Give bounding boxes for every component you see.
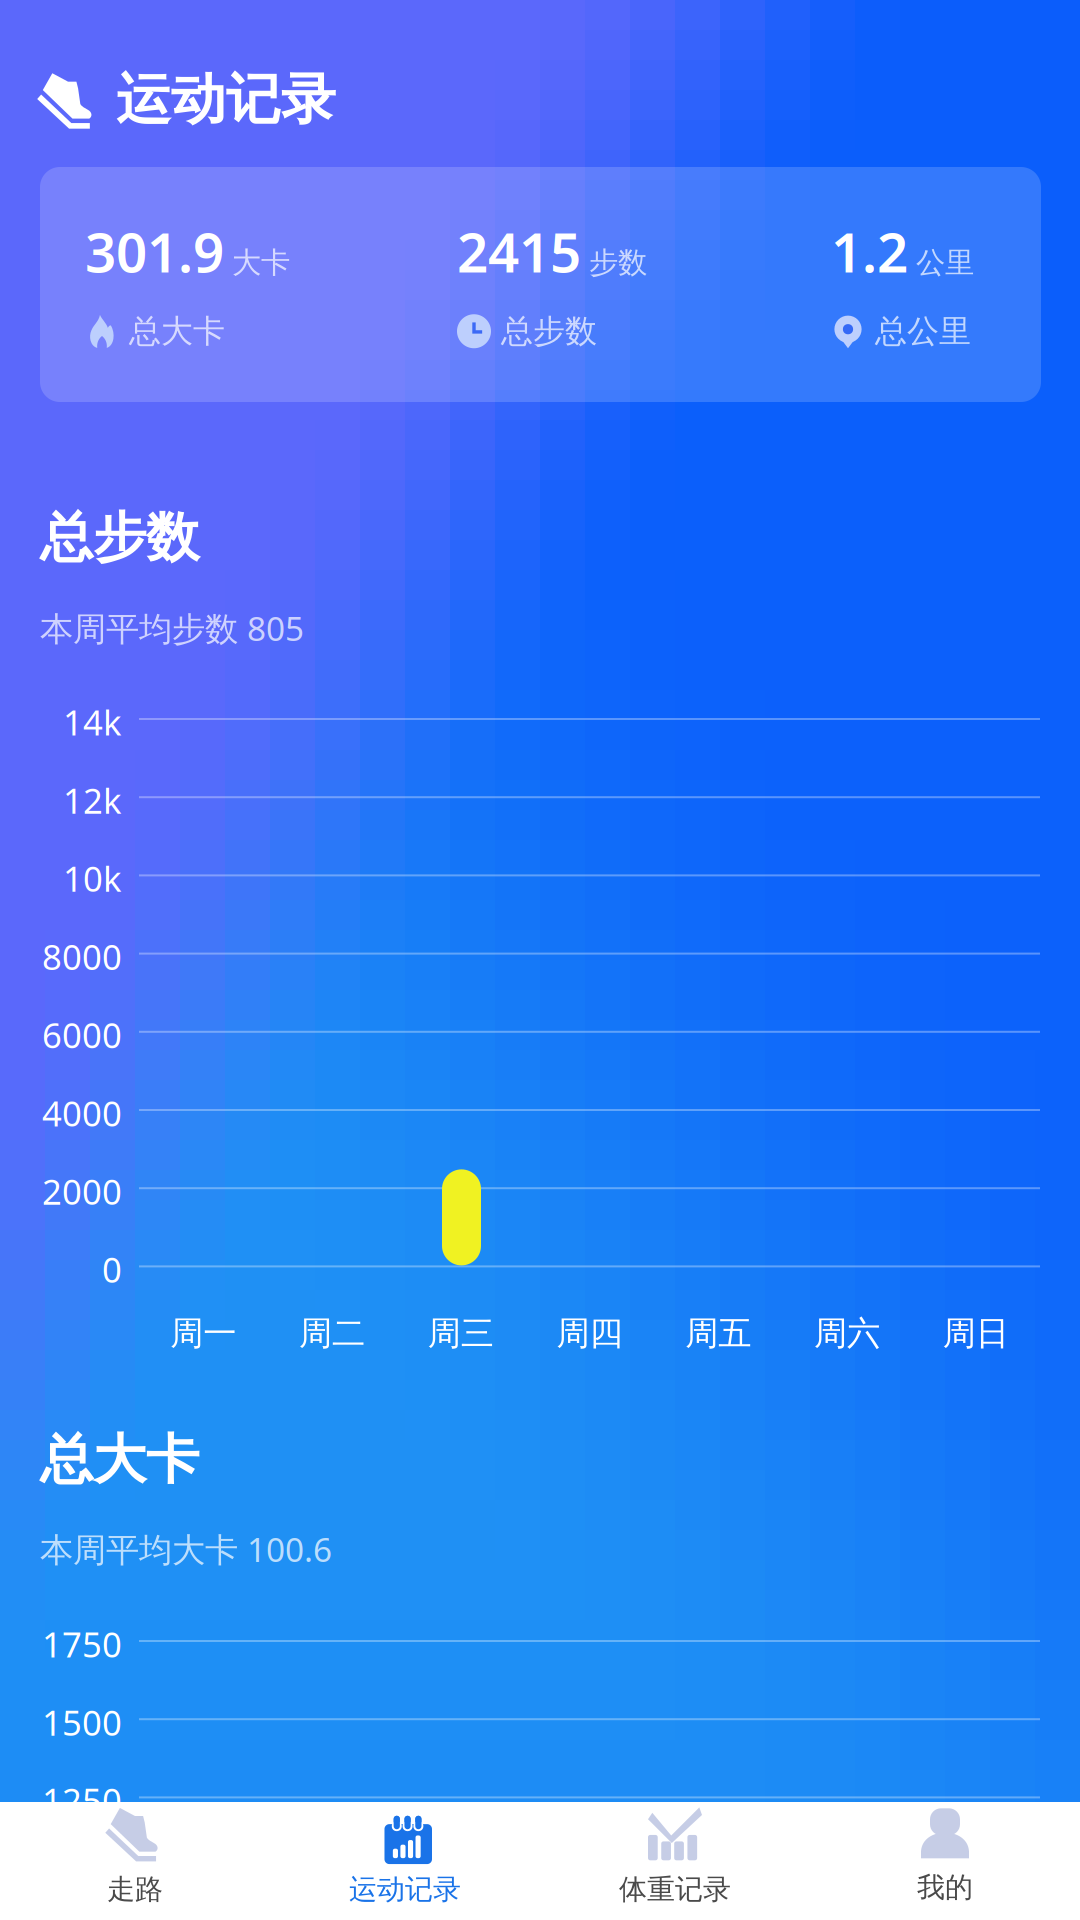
button[interactable]: 体重记录 <box>540 1797 810 1920</box>
staticText: 周六 <box>814 1313 880 1354</box>
staticText: 运动记录 <box>349 1872 461 1907</box>
staticText: 运动记录 <box>116 66 336 133</box>
staticText: 周日 <box>943 1313 1009 1354</box>
staticText: 0 <box>102 1246 122 1292</box>
staticText: 周二 <box>299 1313 365 1354</box>
staticText: 1750 <box>42 1621 122 1667</box>
staticText: 14k <box>63 699 122 745</box>
staticText: 总公里 <box>875 312 971 351</box>
button[interactable]: 运动记录 <box>270 1797 540 1920</box>
staticText: 本周平均步数 805 <box>40 606 304 650</box>
button[interactable]: 走路 <box>0 1797 270 1920</box>
staticText: 周四 <box>556 1313 622 1354</box>
staticText: 2415 <box>457 215 581 288</box>
staticText: 2000 <box>42 1168 122 1214</box>
button[interactable]: 我的 <box>810 1799 1080 1920</box>
staticText: 步数 <box>589 245 647 281</box>
staticText: 周三 <box>428 1313 494 1354</box>
staticText: 8000 <box>42 934 122 980</box>
staticText: 公里 <box>916 245 974 281</box>
staticText: 10k <box>63 855 122 901</box>
staticText: 总大卡 <box>129 312 225 351</box>
staticText: 4000 <box>42 1090 122 1136</box>
staticText: 总步数 <box>501 312 597 351</box>
staticText: 总步数 <box>40 505 199 570</box>
staticText: 体重记录 <box>619 1872 731 1907</box>
staticText: 走路 <box>107 1872 163 1907</box>
staticText: 6000 <box>42 1012 122 1058</box>
staticText: 大卡 <box>232 245 290 281</box>
staticText: 总大卡 <box>40 1427 199 1492</box>
staticText: 301.9 <box>85 215 224 288</box>
staticText: 1.2 <box>831 215 908 288</box>
staticText: 1500 <box>42 1699 122 1745</box>
staticText: 本周平均大卡 100.6 <box>40 1527 332 1571</box>
staticText: 周五 <box>685 1313 751 1354</box>
staticText: 我的 <box>917 1870 973 1905</box>
staticText: 周一 <box>170 1313 236 1354</box>
staticText: 1250 <box>42 1777 122 1823</box>
staticText: 12k <box>63 777 122 823</box>
